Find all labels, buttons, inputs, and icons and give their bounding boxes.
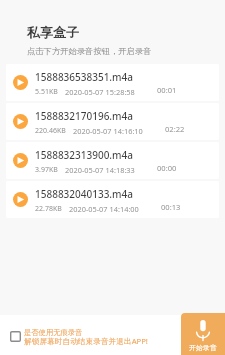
staticText: 220.46KB bbox=[35, 126, 66, 136]
button[interactable]: 播放 bbox=[6, 64, 219, 101]
staticText: 解锁屏幕时自动结束录音并退出APP! bbox=[24, 336, 148, 347]
staticText: 是否使用无痕录音 bbox=[24, 328, 83, 337]
staticText: 2020-05-07 15:28:58 bbox=[65, 87, 135, 97]
button[interactable]: 播放 bbox=[6, 181, 219, 218]
staticText: 2020-05-07 14:16:10 bbox=[73, 126, 143, 136]
staticText: 3.97KB bbox=[35, 165, 58, 175]
staticText: 5.51KB bbox=[35, 87, 58, 97]
staticText: 02:22 bbox=[165, 124, 185, 134]
staticText: 1588836538351.m4a bbox=[35, 70, 133, 84]
staticText: 1588832313900.m4a bbox=[35, 148, 133, 162]
staticText: 2020-05-07 14:18:33 bbox=[65, 165, 135, 175]
staticText: 私享盒子 bbox=[27, 24, 79, 40]
button[interactable]: 播放 bbox=[13, 114, 28, 129]
staticText: 点击下方开始录音按钮，开启录音 bbox=[27, 46, 152, 56]
staticText: 2020-05-07 14:14:00 bbox=[69, 204, 139, 214]
staticText: 00:01 bbox=[157, 85, 177, 95]
button[interactable]: 播放 bbox=[13, 153, 28, 168]
staticText: 开始录音 bbox=[189, 343, 217, 352]
staticText: 1588832040133.m4a bbox=[35, 187, 133, 201]
button[interactable]: 播放 bbox=[13, 75, 28, 90]
staticText: 22.78KB bbox=[35, 204, 62, 214]
staticText: 00:00 bbox=[157, 163, 177, 173]
staticText: 00:13 bbox=[161, 202, 181, 212]
button[interactable]: 播放 bbox=[6, 103, 219, 140]
button[interactable]: 播放 bbox=[13, 192, 28, 207]
button[interactable]: 是否使用无痕录音 bbox=[10, 328, 177, 348]
staticText: 1588832170196.m4a bbox=[35, 109, 133, 123]
button[interactable]: 播放 bbox=[6, 142, 219, 179]
button[interactable]: 开始录音 bbox=[181, 313, 225, 355]
